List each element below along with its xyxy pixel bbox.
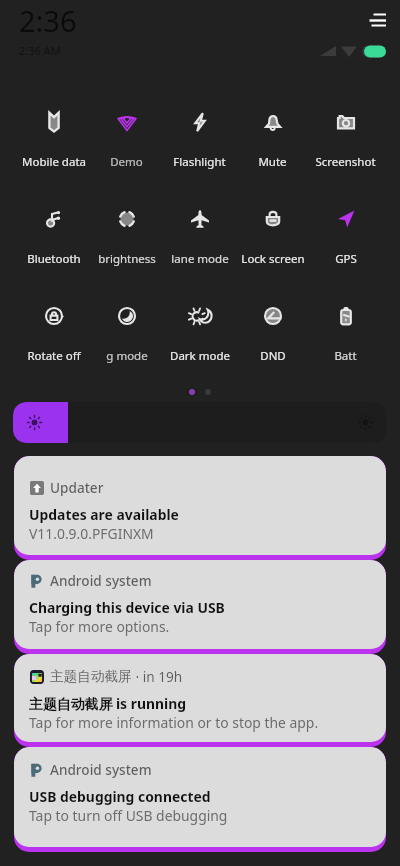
button[interactable]: Flashlight — [163, 98, 236, 195]
button[interactable]: Screenshot — [309, 98, 382, 195]
staticText: Tap for more information or to stop the … — [29, 713, 319, 732]
staticText: DND — [260, 348, 286, 364]
button[interactable]: Mobile data — [18, 98, 90, 195]
button[interactable]: Demo — [90, 98, 163, 195]
staticText: USB debugging connected — [29, 787, 211, 806]
button[interactable]: Lock screen — [236, 195, 309, 292]
staticText: Demo — [110, 154, 143, 170]
staticText: Tap for more options. — [29, 617, 170, 636]
button[interactable]: GPS — [309, 195, 382, 292]
button[interactable]: brightness — [90, 195, 163, 292]
staticText: Android system — [50, 571, 152, 590]
button[interactable]: Menu — [364, 4, 396, 36]
staticText: Dark mode — [170, 348, 230, 364]
staticText: 2:36 — [19, 1, 77, 40]
button[interactable]: lane mode — [163, 195, 236, 292]
button[interactable]: Batt — [309, 292, 382, 389]
button[interactable]: DND — [236, 292, 309, 389]
staticText: Rotate off — [27, 348, 81, 364]
staticText: lane mode — [171, 251, 229, 267]
button[interactable]: Dark mode — [163, 292, 236, 389]
button[interactable]: Android system — [14, 560, 386, 654]
staticText: Lock screen — [241, 251, 305, 267]
staticText: 主题自动截屏 is running — [29, 694, 186, 713]
staticText: · in 19h — [132, 667, 183, 686]
staticText: Updates are available — [29, 505, 179, 524]
staticText: Mobile data — [22, 154, 86, 170]
button[interactable]: Bluetooth — [18, 195, 90, 292]
staticText: Android system — [50, 760, 152, 779]
button[interactable]: Updater — [14, 456, 386, 560]
button[interactable]: g mode — [90, 292, 163, 389]
button[interactable]: 主题自动截屏 — [14, 654, 386, 747]
staticText: 2:36 AM — [19, 43, 61, 58]
staticText: V11.0.9.0.PFGINXM — [29, 524, 154, 543]
staticText: Bluetooth — [27, 251, 81, 267]
staticText: Batt — [334, 348, 357, 364]
button[interactable]: Rotate off — [18, 292, 90, 389]
staticText: Charging this device via USB — [29, 598, 225, 617]
staticText: g mode — [106, 348, 148, 364]
button[interactable]: Mute — [236, 98, 309, 195]
staticText: Tap to turn off USB debugging — [29, 806, 228, 825]
staticText: Updater — [50, 478, 104, 497]
button[interactable]: Android system — [14, 747, 386, 852]
staticText: GPS — [335, 251, 357, 267]
button[interactable]: Brightness — [13, 402, 386, 443]
staticText: Flashlight — [173, 154, 226, 170]
staticText: Mute — [258, 154, 287, 170]
staticText: brightness — [98, 251, 156, 267]
staticText: 主题自动截屏 — [50, 668, 132, 685]
staticText: Screenshot — [315, 154, 376, 170]
